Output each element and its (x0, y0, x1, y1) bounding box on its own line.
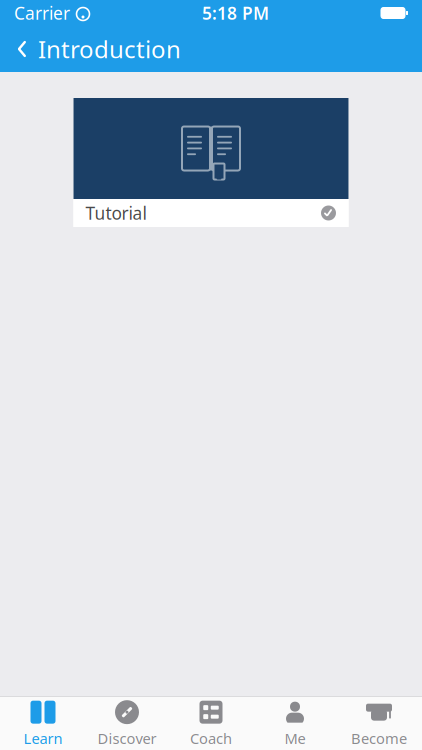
staticText: Tutorial (85, 201, 146, 224)
staticText: Coach (190, 729, 232, 748)
button[interactable]: Become (337, 697, 421, 750)
button[interactable]: Introduction (0, 27, 191, 71)
staticText: Become (351, 729, 407, 748)
staticText: Learn (23, 729, 62, 748)
staticText: 5:18 PM (202, 1, 269, 24)
staticText: Me (284, 729, 305, 748)
staticText: Carrier (14, 1, 70, 24)
button[interactable]: Tutorial (73, 98, 348, 227)
staticText: Discover (97, 729, 156, 748)
button[interactable]: Discover (85, 697, 169, 750)
button[interactable]: Learn (1, 697, 85, 750)
button[interactable]: Coach (169, 697, 253, 750)
staticText: Introduction (38, 33, 181, 65)
button[interactable]: Me (253, 697, 337, 750)
